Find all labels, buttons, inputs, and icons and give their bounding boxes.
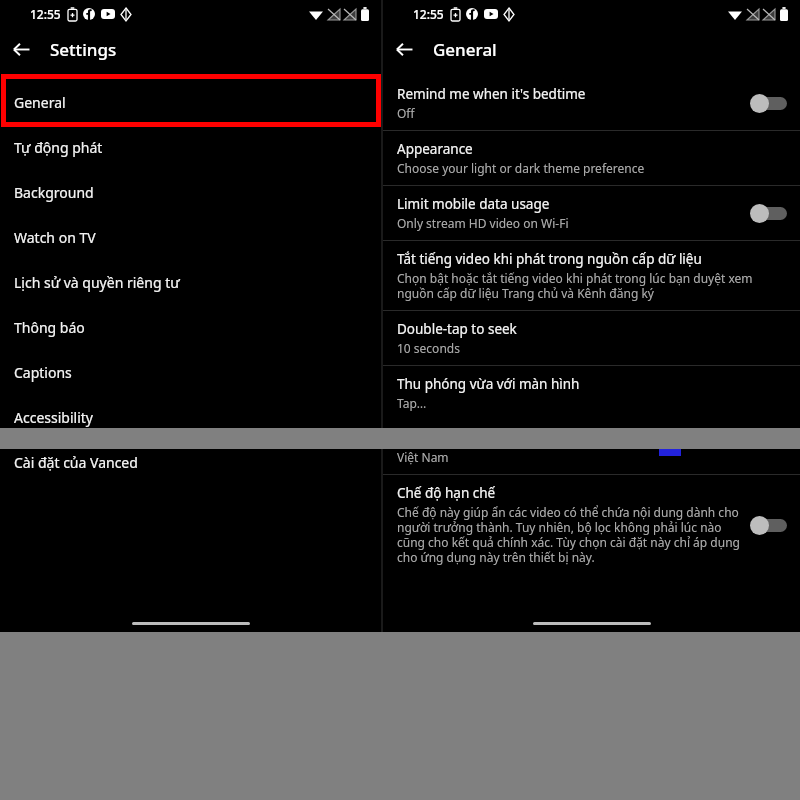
button[interactable]: Toggle off [750,202,790,224]
staticText: Accessibility [14,408,93,427]
button[interactable]: Background [0,170,381,215]
button[interactable] [1,74,381,127]
staticText: Background [14,183,94,202]
staticText: 12:55 [413,6,444,22]
staticText: Appearance [397,140,473,158]
staticText: Settings [50,38,117,61]
button[interactable]: Back [0,28,42,70]
button[interactable]: Appearance [383,131,800,185]
staticText: Việt Nam [397,449,449,465]
button[interactable]: Double-tap to seek [383,311,800,365]
button[interactable]: Back [383,28,425,70]
button[interactable]: General [0,80,381,125]
staticText: Off [397,105,415,121]
staticText: Limit mobile data usage [397,195,550,213]
staticText: Tự động phát [14,138,103,157]
staticText: Chế độ hạn chế [397,484,496,502]
button[interactable]: Lịch sử và quyền riêng tư [0,260,381,305]
staticText: Choose your light or dark theme preferen… [397,160,645,176]
button[interactable]: Tự động phát [0,125,381,170]
staticText: 12:55 [30,6,61,22]
button[interactable]: Cài đặt của Vanced [0,440,381,485]
button[interactable]: Thu phóng vừa với màn hình [383,366,800,420]
staticText: General [14,93,66,112]
staticText: Only stream HD video on Wi-Fi [397,215,569,231]
button[interactable]: Remind me when it's bedtime [383,76,800,130]
staticText: Thu phóng vừa với màn hình [397,375,580,393]
button[interactable]: Captions [0,350,381,395]
staticText: Chế độ này giúp ẩn các video có thể chứa… [397,504,742,565]
button[interactable]: Limit mobile data usage [383,186,800,240]
staticText: Cài đặt của Vanced [14,453,138,472]
staticText: General [433,38,497,61]
button[interactable]: Toggle off [750,92,790,114]
button[interactable]: Location [383,420,800,474]
staticText: Chọn bật hoặc tắt tiếng video khi phát t… [397,270,790,301]
button[interactable]: Accessibility [0,395,381,440]
button[interactable]: Chế độ hạn chế [383,475,800,574]
staticText: Lịch sử và quyền riêng tư [14,273,180,292]
staticText: Remind me when it's bedtime [397,85,586,103]
button[interactable]: Tắt tiếng video khi phát trong nguồn cấp… [383,241,800,310]
button[interactable]: Thông báo [0,305,381,350]
staticText: Captions [14,363,72,382]
staticText: 10 seconds [397,340,460,356]
staticText: Tap… [397,395,427,411]
staticText: Thông báo [14,318,85,337]
button[interactable]: Toggle off [750,514,790,536]
staticText: Double-tap to seek [397,320,517,338]
button[interactable]: Watch on TV [0,215,381,260]
staticText: Watch on TV [14,228,96,247]
staticText: Tắt tiếng video khi phát trong nguồn cấp… [397,250,702,268]
